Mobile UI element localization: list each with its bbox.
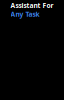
staticText: Assistant For	[10, 1, 53, 10]
staticText: Any Task	[10, 10, 39, 19]
